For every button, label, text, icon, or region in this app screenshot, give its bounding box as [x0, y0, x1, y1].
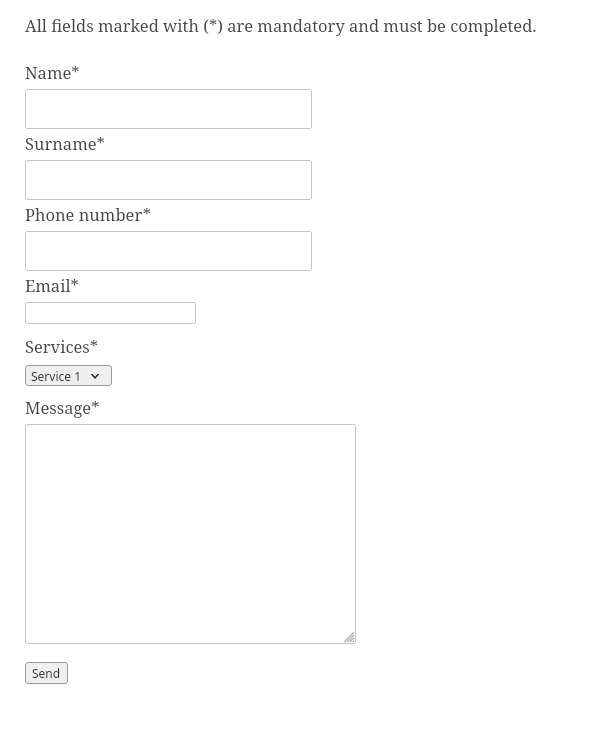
staticText: Message*	[25, 396, 100, 418]
staticText: Services*	[25, 335, 99, 357]
staticText: Email*	[25, 274, 79, 296]
button[interactable]: Name input	[25, 89, 312, 129]
staticText: Surname*	[25, 132, 105, 154]
staticText: Phone number*	[25, 203, 151, 225]
staticText: All fields marked with (*) are mandatory…	[25, 14, 537, 36]
staticText: Service 1	[31, 368, 82, 384]
button[interactable]: Message input	[25, 424, 356, 644]
button[interactable]: Email input	[25, 302, 196, 324]
staticText: Name*	[25, 61, 80, 83]
button[interactable]: Send	[25, 662, 68, 684]
button[interactable]: Service 1	[25, 365, 112, 386]
staticText: Send	[32, 665, 61, 681]
button[interactable]: Surname input	[25, 160, 312, 200]
button[interactable]: Phone number input	[25, 231, 312, 271]
